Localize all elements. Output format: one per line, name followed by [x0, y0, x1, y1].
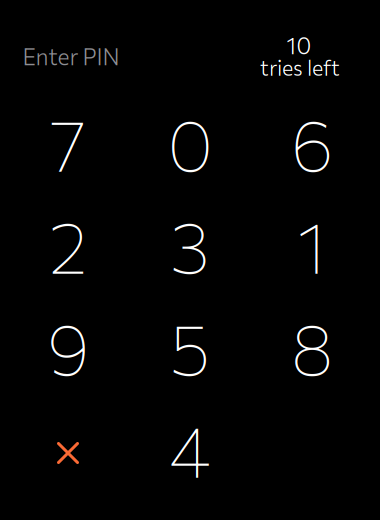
staticText: 4	[169, 406, 211, 492]
staticText: Enter PIN	[22, 42, 119, 70]
staticText: 8	[291, 304, 333, 390]
button[interactable]: Delete	[9, 403, 127, 503]
button[interactable]: 9	[9, 297, 127, 397]
staticText: 1	[297, 202, 326, 288]
staticText: 7	[50, 100, 86, 186]
button[interactable]: 2	[9, 195, 127, 295]
button[interactable]: 5	[131, 297, 249, 397]
button[interactable]: 6	[253, 93, 371, 193]
button[interactable]: 0	[131, 93, 249, 193]
button[interactable]: 3	[131, 195, 249, 295]
button[interactable]: 4	[131, 399, 249, 499]
staticText: 6	[291, 100, 333, 186]
staticText: 10	[286, 31, 311, 59]
staticText: tries left	[260, 54, 340, 80]
button[interactable]: 8	[253, 297, 371, 397]
staticText: 5	[170, 304, 210, 390]
staticText: 2	[49, 202, 87, 288]
button[interactable]: 7	[9, 93, 127, 193]
staticText: 9	[47, 304, 89, 390]
staticText: 0	[167, 100, 212, 186]
staticText: 3	[170, 202, 210, 288]
button[interactable]: 1	[253, 195, 371, 295]
